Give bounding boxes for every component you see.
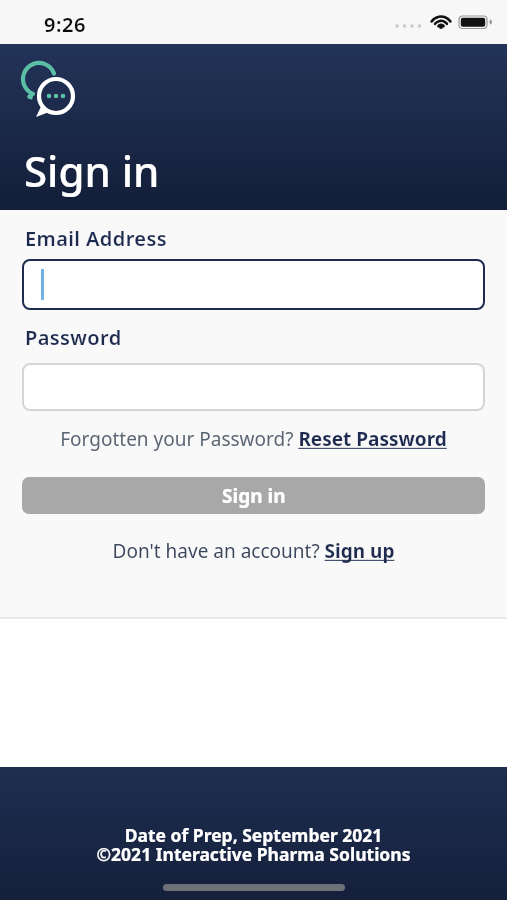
button[interactable] [22,259,485,310]
button[interactable]: Sign in [22,477,485,514]
staticText: Sign in [222,483,286,509]
staticText: 9:26 [44,11,86,38]
button[interactable]: Forgotten your Password? Reset Password [22,426,485,452]
button[interactable] [22,363,485,411]
staticText: Sign in [24,142,160,199]
staticText: Password [25,324,122,351]
staticText: Email Address [25,225,167,252]
staticText: Date of Prep, September 2021 ©2021 Inter… [0,823,507,866]
button[interactable]: Don't have an account? Sign up [22,538,485,564]
